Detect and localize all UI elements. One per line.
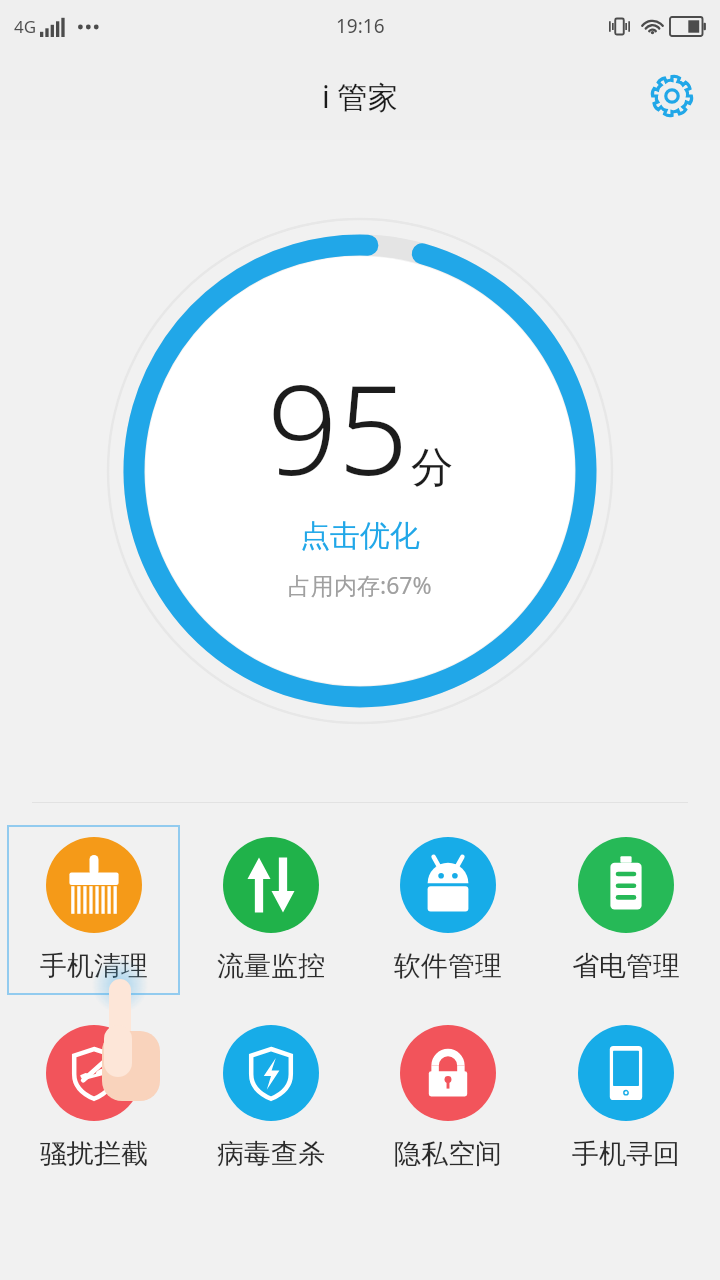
staticText: 软件管理 [394, 949, 502, 983]
button[interactable]: 95 [259, 334, 461, 608]
button[interactable]: 病毒查杀 [184, 1013, 357, 1183]
staticText: 手机清理 [40, 949, 148, 983]
staticText: 分 [411, 442, 453, 495]
button[interactable]: 流量监控 [184, 825, 357, 995]
staticText: 19:16 [336, 13, 385, 39]
staticText: 点击优化 [300, 517, 420, 555]
staticText: 省电管理 [572, 949, 680, 983]
staticText: 骚扰拦截 [40, 1137, 148, 1171]
staticText: 隐私空间 [394, 1137, 502, 1171]
staticText: i 管家 [322, 76, 398, 117]
button[interactable]: 手机清理 [7, 825, 180, 995]
staticText: 95 [267, 342, 409, 511]
staticText: 4G [14, 15, 37, 38]
staticText: 手机寻回 [572, 1137, 680, 1171]
button[interactable]: 手机寻回 [539, 1013, 713, 1183]
button[interactable]: 骚扰拦截 [7, 1013, 180, 1183]
staticText: 病毒查杀 [217, 1137, 325, 1171]
staticText: 占用内存:67% [288, 569, 432, 600]
button[interactable]: 隐私空间 [361, 1013, 535, 1183]
button[interactable]: 软件管理 [361, 825, 535, 995]
staticText: 流量监控 [217, 949, 325, 983]
button[interactable]: 省电管理 [539, 825, 713, 995]
button[interactable]: Settings [644, 68, 700, 124]
